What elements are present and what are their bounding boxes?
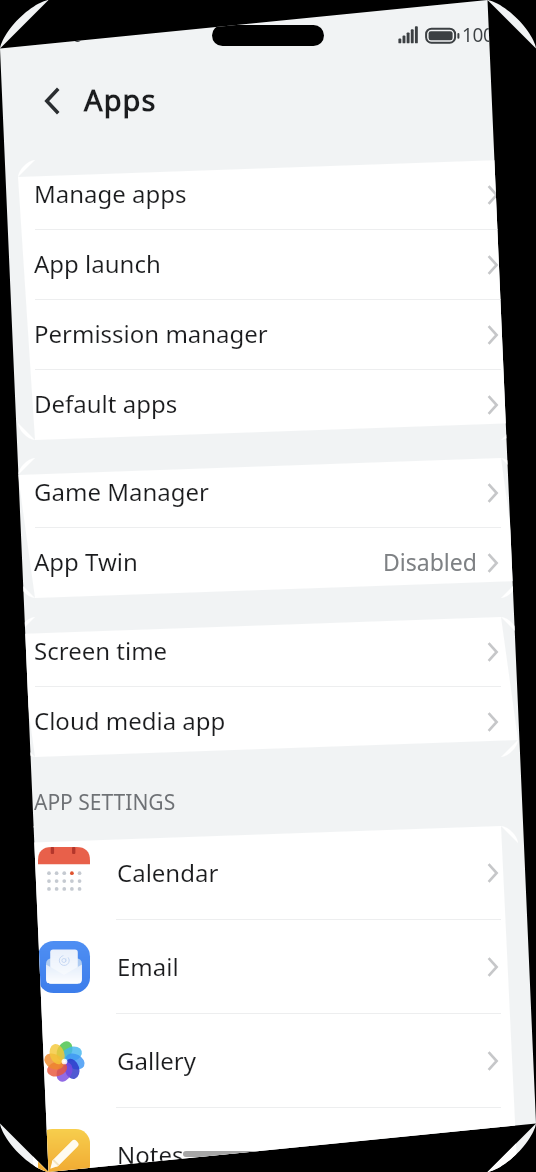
staticText: Game Manager	[34, 475, 209, 508]
button[interactable]: Email	[18, 920, 518, 1014]
button[interactable]: Manage apps	[18, 160, 518, 230]
staticText: APP SETTINGS	[34, 788, 176, 817]
button[interactable]: Notes	[18, 1108, 518, 1172]
button[interactable]: Calendar	[18, 826, 518, 920]
button[interactable]: App Twin	[18, 528, 518, 598]
button[interactable]: Back	[32, 81, 72, 121]
staticText: Disabled	[383, 546, 477, 577]
staticText: Apps	[84, 80, 157, 119]
button[interactable]: Game Manager	[18, 458, 518, 528]
staticText: App Twin	[34, 545, 138, 578]
staticText: Manage apps	[34, 177, 187, 210]
button[interactable]: Gallery	[18, 1014, 518, 1108]
staticText: Notes	[117, 1138, 184, 1171]
staticText: Screen time	[34, 634, 168, 667]
staticText: Calendar	[117, 856, 219, 889]
button[interactable]: Permission manager	[18, 300, 518, 370]
button[interactable]: Cloud media app	[18, 687, 518, 757]
button[interactable]: Default apps	[18, 370, 518, 440]
staticText: 100%	[462, 22, 509, 48]
staticText: Permission manager	[34, 317, 268, 350]
staticText: App launch	[34, 247, 161, 280]
staticText: 10:00	[32, 22, 84, 48]
button[interactable]: Screen time	[18, 617, 518, 687]
staticText: Cloud media app	[34, 704, 226, 737]
staticText: Gallery	[117, 1044, 197, 1077]
button[interactable]: App launch	[18, 230, 518, 300]
staticText: Default apps	[34, 387, 178, 420]
staticText: Email	[117, 950, 179, 983]
